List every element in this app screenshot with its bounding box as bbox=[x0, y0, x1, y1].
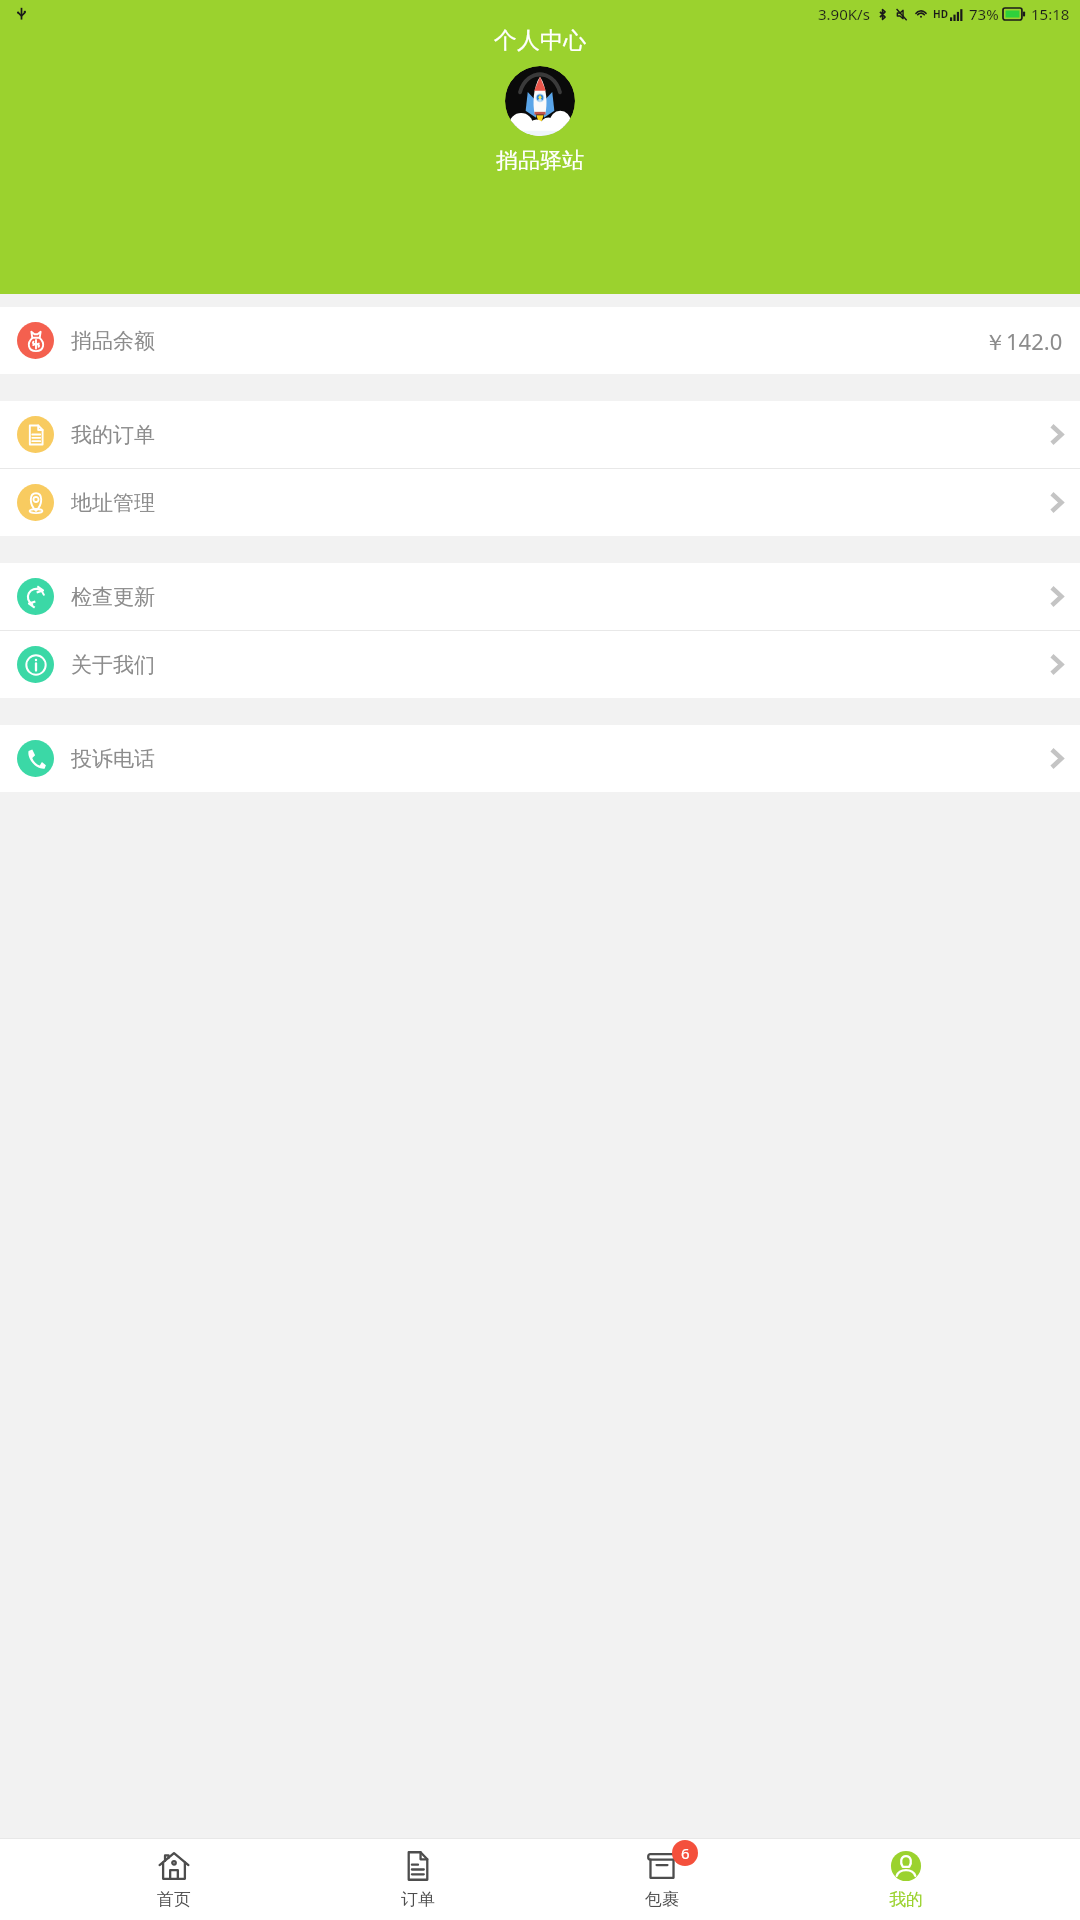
staticText: ￥142.0 bbox=[984, 326, 1063, 356]
button[interactable]: Profile avatar bbox=[505, 66, 575, 136]
button[interactable]: 我的订单 bbox=[0, 401, 1080, 468]
staticText: 15:18 bbox=[1031, 4, 1070, 24]
staticText: 3.90K/s bbox=[818, 4, 870, 24]
button[interactable]: 6 bbox=[592, 1839, 732, 1920]
staticText: 包裹 bbox=[645, 1889, 679, 1910]
staticText: 首页 bbox=[157, 1889, 191, 1910]
button[interactable]: 首页 bbox=[104, 1839, 244, 1920]
staticText: 捎品余额 bbox=[71, 328, 155, 354]
staticText: 我的 bbox=[889, 1889, 923, 1910]
staticText: 个人中心 bbox=[494, 26, 586, 55]
button[interactable]: 投诉电话 bbox=[0, 725, 1080, 792]
staticText: 73% bbox=[969, 4, 999, 24]
staticText: HD bbox=[933, 7, 948, 21]
button[interactable]: 捎品余额 bbox=[0, 307, 1080, 374]
button[interactable]: 地址管理 bbox=[0, 469, 1080, 536]
staticText: 投诉电话 bbox=[71, 746, 155, 772]
staticText: 订单 bbox=[401, 1889, 435, 1910]
staticText: 6 bbox=[681, 1843, 690, 1863]
button[interactable]: 我的 bbox=[836, 1839, 976, 1920]
staticText: 捎品驿站 bbox=[496, 147, 584, 175]
button[interactable]: 检查更新 bbox=[0, 563, 1080, 630]
staticText: 我的订单 bbox=[71, 422, 155, 448]
staticText: 地址管理 bbox=[71, 490, 155, 516]
button[interactable]: 关于我们 bbox=[0, 631, 1080, 698]
button[interactable]: 订单 bbox=[348, 1839, 488, 1920]
staticText: 检查更新 bbox=[71, 584, 155, 610]
staticText: 关于我们 bbox=[71, 652, 155, 678]
